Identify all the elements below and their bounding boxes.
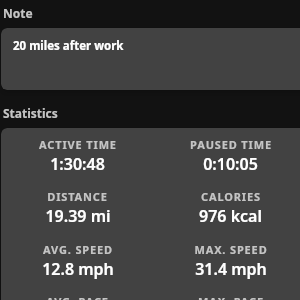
staticText: 976 kcal <box>199 205 262 227</box>
staticText: PAUSED TIME <box>190 137 272 152</box>
staticText: AVG. SPEED <box>43 242 113 257</box>
staticText: Statistics <box>3 105 58 121</box>
staticText: 0:10:05 <box>203 153 258 175</box>
staticText: Note <box>3 5 33 21</box>
staticText: 1:30:48 <box>50 153 105 175</box>
button[interactable]: DISTANCE <box>1 189 154 227</box>
staticText: MAX. PACE <box>198 294 264 300</box>
staticText: CALORIES <box>201 189 261 204</box>
staticText: MAX. SPEED <box>194 242 268 257</box>
button[interactable]: AVG. SPEED <box>1 242 154 280</box>
staticText: 31.4 mph <box>195 258 267 280</box>
button[interactable]: AVG. PACE <box>1 294 154 300</box>
staticText: ACTIVE TIME <box>39 137 117 152</box>
button[interactable]: ACTIVE TIME <box>1 137 154 175</box>
staticText: 12.8 mph <box>42 258 114 280</box>
button[interactable]: 20 miles after work <box>1 28 300 90</box>
button[interactable]: CALORIES <box>154 189 300 227</box>
staticText: DISTANCE <box>47 189 108 204</box>
staticText: 19.39 mi <box>45 205 111 227</box>
button[interactable]: PAUSED TIME <box>154 137 300 175</box>
button[interactable]: MAX. SPEED <box>154 242 300 280</box>
button[interactable]: MAX. PACE <box>154 294 300 300</box>
staticText: AVG. PACE <box>46 294 109 300</box>
staticText: 20 miles after work <box>13 38 124 54</box>
